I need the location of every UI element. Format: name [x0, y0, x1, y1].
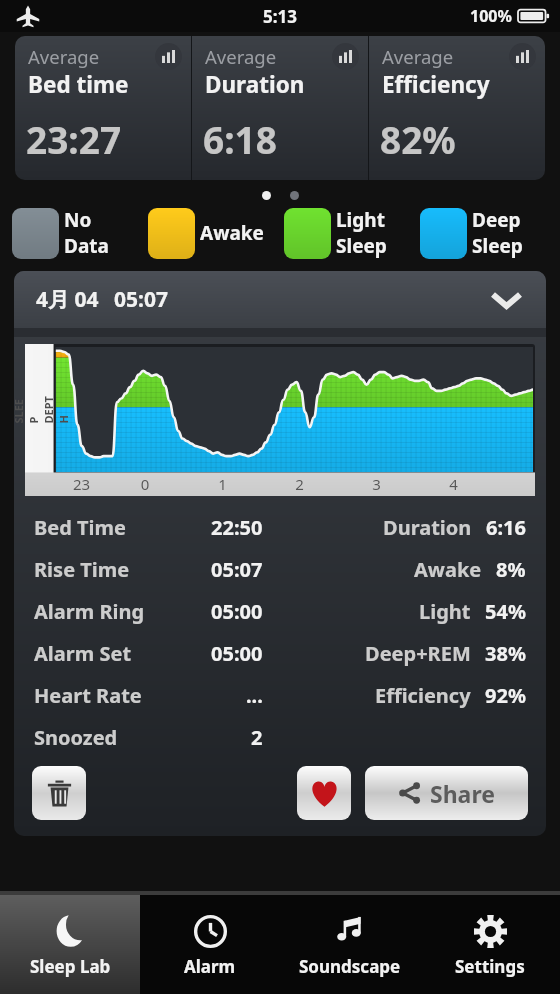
- staticText: Sleep: [336, 233, 387, 259]
- staticText: 23: [57, 474, 106, 494]
- staticText: Settings: [455, 955, 525, 978]
- button[interactable]: Sleep Lab: [0, 895, 140, 994]
- staticText: Bed time: [28, 69, 129, 100]
- staticText: Average: [28, 44, 100, 69]
- staticText: Alarm Ring: [34, 598, 145, 625]
- staticText: Sleep: [472, 233, 523, 259]
- button[interactable]: Average: [192, 36, 368, 180]
- staticText: Snoozed: [34, 724, 118, 751]
- staticText: Deep+REM: [365, 640, 471, 667]
- staticText: Efficiency: [375, 682, 471, 709]
- staticText: Data: [64, 233, 109, 259]
- button[interactable]: Light: [284, 205, 420, 261]
- staticText: 05:07: [114, 285, 168, 314]
- staticText: 2: [251, 724, 263, 751]
- button[interactable]: 4月 04: [14, 271, 546, 328]
- staticText: 54%: [485, 598, 526, 625]
- staticText: 05:00: [211, 598, 263, 625]
- staticText: Average: [205, 44, 277, 69]
- button[interactable]: Soundscape: [280, 895, 420, 994]
- staticText: Average: [382, 44, 454, 69]
- staticText: SLEEP DEPTH: [14, 392, 70, 423]
- staticText: 0: [106, 474, 184, 494]
- staticText: 4月 04: [36, 285, 99, 314]
- staticText: Efficiency: [382, 69, 490, 100]
- staticText: 6:16: [486, 514, 526, 541]
- staticText: Alarm: [184, 955, 236, 978]
- staticText: 4: [415, 474, 492, 494]
- staticText: Alarm Set: [34, 640, 132, 667]
- button[interactable]: Awake: [148, 205, 284, 261]
- staticText: Sleep Lab: [30, 955, 111, 978]
- staticText: Awake: [414, 556, 482, 583]
- staticText: Light: [419, 598, 471, 625]
- staticText: 82%: [380, 114, 456, 164]
- staticText: 5:13: [263, 5, 297, 28]
- staticText: Deep: [472, 207, 521, 233]
- staticText: Light: [336, 207, 385, 233]
- staticText: Soundscape: [299, 955, 401, 978]
- staticText: Awake: [200, 220, 264, 246]
- staticText: 22:50: [211, 514, 263, 541]
- staticText: 05:00: [211, 640, 263, 667]
- button[interactable]: Average: [369, 36, 545, 180]
- button[interactable]: No: [12, 205, 148, 261]
- button[interactable]: Deep: [420, 205, 556, 261]
- button[interactable]: Statistics: [155, 43, 182, 70]
- staticText: 92%: [485, 682, 526, 709]
- staticText: 6:18: [203, 114, 277, 164]
- button[interactable]: Statistics: [509, 43, 536, 70]
- staticText: 1: [184, 474, 261, 494]
- button[interactable]: Average: [15, 36, 191, 180]
- button[interactable]: Settings: [420, 895, 560, 994]
- staticText: 3: [338, 474, 415, 494]
- staticText: Duration: [383, 514, 472, 541]
- staticText: 8%: [496, 556, 526, 583]
- staticText: 2: [261, 474, 338, 494]
- button[interactable]: Favorite: [297, 766, 351, 820]
- button[interactable]: Alarm: [140, 895, 280, 994]
- button[interactable]: Share: [365, 766, 528, 820]
- staticText: Bed Time: [34, 514, 127, 541]
- staticText: 38%: [485, 640, 526, 667]
- staticText: 100%: [470, 5, 512, 27]
- staticText: 23:27: [26, 114, 122, 164]
- staticText: Heart Rate: [34, 682, 142, 709]
- staticText: Duration: [205, 69, 305, 100]
- staticText: 05:07: [211, 556, 263, 583]
- staticText: ...: [246, 682, 263, 709]
- staticText: Share: [430, 778, 495, 809]
- staticText: Rise Time: [34, 556, 130, 583]
- button[interactable]: Statistics: [332, 43, 359, 70]
- staticText: No: [64, 207, 92, 233]
- button[interactable]: Delete: [32, 766, 86, 820]
